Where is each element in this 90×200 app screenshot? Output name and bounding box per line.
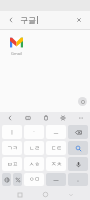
button[interactable]: ㅈㅊ: [46, 157, 66, 171]
staticText: —: [53, 176, 59, 183]
button[interactable]: Scroll: [78, 97, 87, 106]
button[interactable]: ㅇㅁ: [24, 173, 44, 186]
button[interactable]: Clear search: [73, 14, 85, 26]
staticText: Gmail: [11, 51, 22, 56]
staticText: ㅣ: [9, 129, 15, 136]
button[interactable]: Recents: [14, 189, 25, 200]
button[interactable]: Gmail: [5, 34, 27, 58]
staticText: ㅅㅎ: [29, 161, 40, 168]
staticText: ㅇㅁ: [29, 176, 40, 183]
staticText: ㄴㄹ: [29, 145, 40, 152]
button[interactable]: —: [46, 173, 66, 186]
button[interactable]: Symbols: [13, 173, 22, 186]
button[interactable]: Home: [40, 189, 51, 200]
button[interactable]: Period: [68, 173, 88, 186]
staticText: ㄱㅋ: [7, 145, 18, 152]
button[interactable]: Voice input: [68, 157, 88, 171]
button[interactable]: Clipboard: [40, 112, 51, 123]
button[interactable]: Expand toolbar: [4, 112, 15, 123]
staticText: ㅂㅍ: [7, 161, 18, 168]
button[interactable]: Search: [68, 141, 88, 155]
staticText: ㄷㅌ: [51, 145, 62, 152]
button[interactable]: Language: [2, 173, 11, 186]
button[interactable]: ㄱㅋ: [2, 141, 22, 155]
button[interactable]: Back: [65, 189, 76, 200]
button[interactable]: Back: [5, 14, 17, 26]
staticText: 구글: [20, 15, 36, 25]
button[interactable]: ㅂㅍ: [2, 157, 22, 171]
button[interactable]: More options: [75, 112, 86, 123]
button[interactable]: ㅣ: [2, 125, 22, 139]
button[interactable]: ㅅㅎ: [24, 157, 44, 171]
button[interactable]: ㅡ: [46, 125, 66, 139]
button[interactable]: ㄷㅌ: [46, 141, 66, 155]
button[interactable]: Sticker: [22, 112, 33, 123]
staticText: ㆍ: [31, 129, 37, 136]
staticText: ㅡ: [53, 129, 59, 136]
staticText: ㅈㅊ: [51, 161, 62, 168]
button[interactable]: ㄴㄹ: [24, 141, 44, 155]
button[interactable]: Backspace: [68, 125, 88, 139]
button[interactable]: Settings: [57, 112, 68, 123]
